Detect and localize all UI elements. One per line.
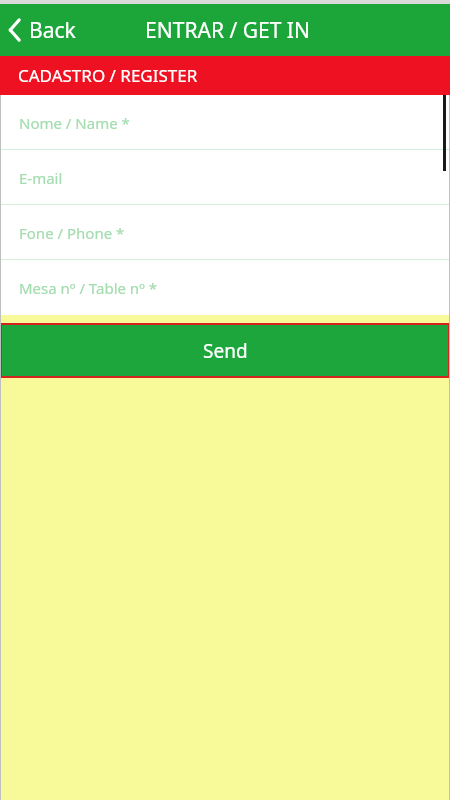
- button[interactable]: Mesa nº / Table nº *: [0, 260, 450, 315]
- staticText: Fone / Phone *: [19, 223, 125, 243]
- button[interactable]: Nome / Name *: [0, 95, 450, 150]
- staticText: Nome / Name *: [19, 113, 130, 133]
- staticText: Mesa nº / Table nº *: [19, 278, 157, 298]
- button[interactable]: E-mail: [0, 150, 450, 205]
- staticText: E-mail: [19, 168, 63, 188]
- button[interactable]: Back: [8, 4, 76, 56]
- staticText: ENTRAR / GET IN: [145, 16, 310, 45]
- staticText: Back: [29, 16, 76, 45]
- staticText: CADASTRO / REGISTER: [18, 64, 198, 87]
- button[interactable]: Send: [2, 325, 448, 376]
- button[interactable]: Fone / Phone *: [0, 205, 450, 260]
- staticText: Send: [203, 338, 248, 364]
